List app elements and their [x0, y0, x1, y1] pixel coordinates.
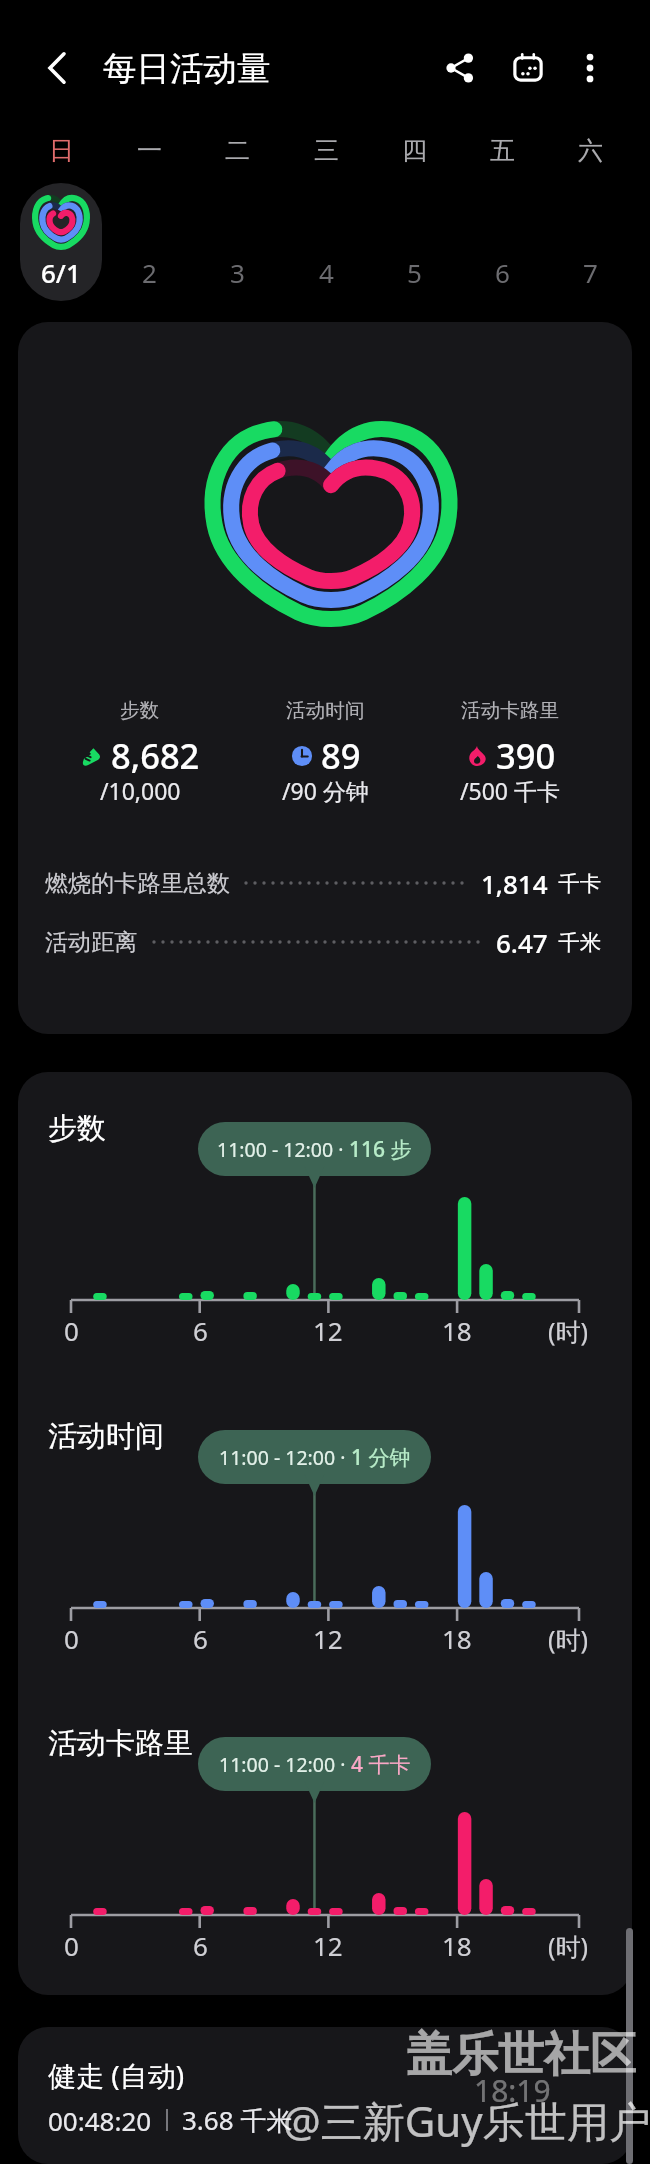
staticText: 0	[64, 1621, 79, 1656]
staticText: 日	[49, 135, 74, 166]
button[interactable]: 7	[552, 255, 628, 289]
button[interactable]: 6	[464, 255, 540, 289]
staticText: 六	[578, 135, 603, 166]
staticText: 12	[313, 1928, 343, 1963]
staticText: 4 千卡	[351, 1750, 411, 1779]
staticText: 1 分钟	[351, 1443, 411, 1472]
staticText: 活动时间	[286, 698, 365, 723]
staticText: @三新Guy乐世用户	[283, 2092, 650, 2149]
staticText: 四	[402, 135, 427, 166]
staticText: 11:00 - 12:00 ·	[219, 1444, 351, 1471]
staticText: 6/1	[41, 255, 81, 289]
staticText: (时)	[548, 1314, 589, 1348]
staticText: 一	[137, 135, 162, 166]
staticText: 0	[64, 1313, 79, 1348]
staticText: 2	[142, 255, 157, 289]
staticText: 活动卡路里	[48, 1725, 193, 1762]
staticText: (时)	[548, 1622, 589, 1656]
button[interactable]: 6/1	[23, 255, 99, 289]
button[interactable]: 步数	[18, 322, 632, 1034]
button[interactable]: 3	[199, 255, 275, 289]
staticText: (时)	[548, 1929, 589, 1963]
staticText: 18	[442, 1928, 472, 1963]
staticText: 步数	[120, 698, 160, 723]
staticText: 18	[442, 1313, 472, 1348]
staticText: 3	[230, 255, 245, 289]
button[interactable]: Share	[432, 40, 488, 96]
staticText: 0	[64, 1928, 79, 1963]
staticText: 三	[314, 135, 339, 166]
staticText: 11:00 - 12:00 ·	[219, 1751, 351, 1778]
staticText: 3.68 千米	[182, 2102, 293, 2138]
staticText: 活动距离	[45, 928, 138, 957]
staticText: 12	[313, 1313, 343, 1348]
button[interactable]: Back	[30, 40, 86, 96]
staticText: 千卡	[558, 870, 601, 897]
staticText: 116 步	[349, 1135, 412, 1164]
staticText: /500 千卡	[460, 775, 561, 806]
staticText: 00:48:20	[48, 2103, 152, 2138]
staticText: /10,000	[100, 775, 181, 806]
staticText: 二	[225, 135, 250, 166]
staticText: 盖乐世社区	[406, 2026, 636, 2084]
button[interactable]: 2	[111, 255, 187, 289]
staticText: 每日活动量	[103, 48, 271, 90]
staticText: /90 分钟	[282, 775, 369, 806]
staticText: 健走 (自动)	[48, 2056, 185, 2094]
staticText: 五	[490, 135, 515, 166]
button[interactable]: 4	[288, 255, 364, 289]
staticText: 8,682	[111, 732, 200, 779]
button[interactable]: Calendar	[500, 40, 556, 96]
staticText: 89	[321, 732, 361, 779]
staticText: 6	[495, 255, 510, 289]
button[interactable]: 5	[376, 255, 452, 289]
staticText: 6	[193, 1313, 208, 1348]
staticText: 活动卡路里	[461, 698, 559, 723]
staticText: 18:19	[474, 2070, 551, 2111]
staticText: 千米	[558, 929, 601, 956]
staticText: 12	[313, 1621, 343, 1656]
staticText: 7	[583, 255, 598, 289]
staticText: 6	[193, 1621, 208, 1656]
staticText: 390	[496, 732, 556, 779]
staticText: 燃烧的卡路里总数	[45, 869, 230, 898]
button[interactable]: More options	[562, 40, 618, 96]
staticText: 6.47	[496, 925, 548, 960]
staticText: 18	[442, 1621, 472, 1656]
staticText: 1,814	[481, 866, 548, 901]
button[interactable]	[20, 183, 102, 301]
staticText: 4	[319, 255, 334, 289]
staticText: 活动时间	[48, 1418, 164, 1455]
staticText: 步数	[48, 1110, 106, 1147]
staticText: 6	[193, 1928, 208, 1963]
staticText: 11:00 - 12:00 ·	[217, 1136, 349, 1163]
button[interactable]: 健走 (自动)	[18, 2027, 632, 2164]
staticText: 5	[407, 255, 422, 289]
